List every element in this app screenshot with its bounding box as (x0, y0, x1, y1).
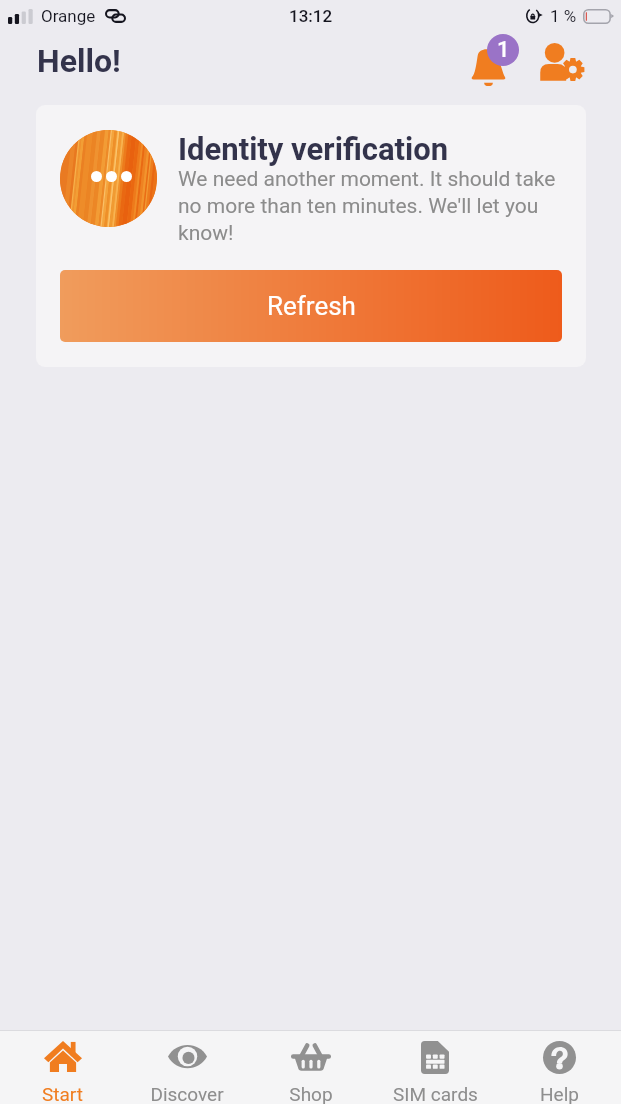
staticText: Discover (150, 1083, 224, 1104)
staticText: Help (540, 1083, 579, 1104)
button[interactable]: Refresh (60, 270, 562, 342)
button[interactable]: Start (0, 1031, 125, 1104)
button[interactable]: SIM cards (373, 1031, 497, 1104)
staticText: Start (42, 1083, 83, 1104)
button[interactable]: Notifications (462, 31, 524, 91)
staticText: Identity verification (178, 131, 449, 167)
staticText: Hello! (37, 42, 121, 80)
button[interactable]: Help (497, 1031, 621, 1104)
staticText: 1 (497, 37, 510, 63)
staticText: Shop (289, 1083, 333, 1104)
button[interactable]: Discover (125, 1031, 249, 1104)
button[interactable]: Identity verification (36, 105, 586, 367)
staticText: 13:12 (289, 6, 333, 26)
button[interactable]: Account settings (534, 36, 596, 92)
staticText: 1 % (550, 6, 577, 26)
button[interactable]: Shop (249, 1031, 373, 1104)
staticText: SIM cards (393, 1083, 478, 1104)
staticText: Orange (41, 6, 96, 26)
staticText: We need another moment. It should take n… (178, 167, 556, 246)
staticText: Refresh (267, 291, 356, 321)
